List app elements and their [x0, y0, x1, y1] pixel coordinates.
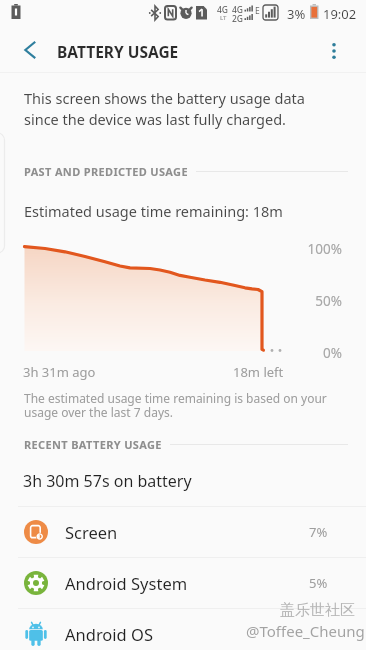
staticText: Android System — [65, 572, 188, 594]
staticText: 3h 31m ago — [23, 363, 96, 381]
staticText: 2G — [232, 13, 244, 25]
button[interactable]: Navigate up — [8, 28, 52, 72]
staticText: 50% — [276, 292, 342, 310]
staticText: 5% — [309, 574, 328, 592]
staticText: 4G — [232, 4, 244, 16]
staticText: 7% — [309, 523, 328, 541]
staticText: 19:02 — [323, 5, 357, 23]
button[interactable]: More options — [314, 31, 354, 71]
staticText: 4G — [217, 4, 229, 16]
staticText: E — [255, 5, 260, 17]
staticText: @Toffee_Cheung — [246, 621, 365, 641]
staticText: This screen shows the battery usage data… — [24, 88, 305, 130]
staticText: 0% — [276, 344, 342, 362]
staticText: 盖乐世社区 — [280, 601, 355, 620]
staticText: PAST AND PREDICTED USAGE — [24, 164, 188, 179]
staticText: Estimated usage time remaining: 18m — [24, 201, 283, 221]
staticText: 100% — [276, 240, 342, 258]
staticText: 3% — [287, 5, 306, 23]
button[interactable]: Screen — [0, 507, 366, 557]
staticText: BATTERY USAGE — [57, 41, 179, 62]
staticText: RECENT BATTERY USAGE — [24, 437, 162, 452]
staticText: The estimated usage time remaining is ba… — [24, 390, 327, 421]
button[interactable]: Android OS — [0, 609, 366, 650]
button[interactable]: Android System — [0, 558, 366, 608]
staticText: 18m left — [233, 363, 284, 381]
staticText: LT — [220, 14, 227, 22]
staticText: Android OS — [65, 623, 153, 645]
staticText: 3h 30m 57s on battery — [23, 470, 192, 492]
staticText: Screen — [65, 521, 118, 543]
